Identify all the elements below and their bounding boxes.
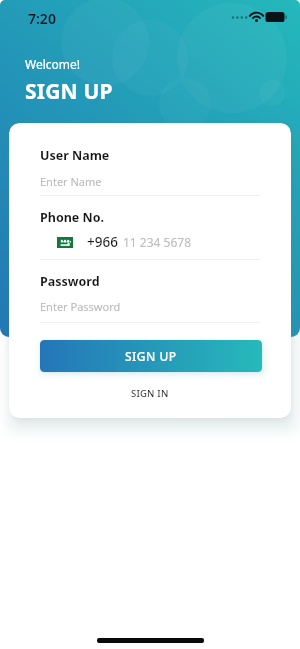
staticText: 11 234 5678	[123, 234, 192, 250]
staticText: Enter Password	[40, 299, 121, 314]
button[interactable]: SIGN UP	[40, 340, 262, 372]
staticText: SIGN UP	[125, 348, 177, 364]
staticText: 7:20	[28, 9, 56, 28]
staticText: Password	[40, 273, 100, 290]
staticText: +966	[87, 233, 118, 251]
button[interactable]: SIGN IN	[40, 385, 260, 402]
other: Signal, wifi and battery status	[230, 10, 288, 24]
button[interactable]: +966	[40, 233, 260, 251]
staticText: SIGN IN	[131, 387, 169, 400]
staticText: User Name	[40, 147, 110, 164]
staticText: Phone No.	[40, 209, 105, 226]
staticText: SIGN UP	[25, 77, 113, 106]
staticText: Welcome!	[25, 56, 81, 72]
staticText: Enter Name	[40, 174, 102, 189]
